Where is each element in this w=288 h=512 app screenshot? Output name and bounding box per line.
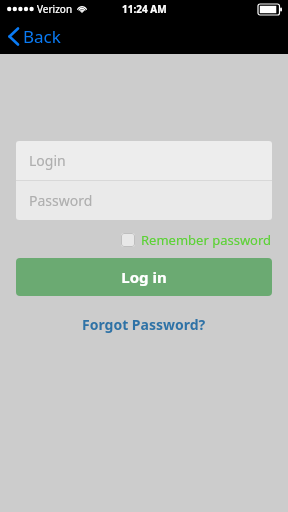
staticText: Log in [121,267,167,287]
staticText: Remember password [141,231,272,249]
button[interactable]: Login [16,141,272,180]
staticText: Forgot Password? [82,315,206,334]
button[interactable]: Password [16,181,272,220]
button[interactable]: Back [0,21,73,52]
button[interactable]: Remember password [121,229,272,251]
staticText: Login [29,151,66,170]
staticText: Password [29,191,93,210]
button[interactable]: Forgot Password? [72,311,216,338]
staticText: 11:24 AM [122,2,167,16]
staticText: Verizon [37,2,73,16]
button[interactable]: Log in [16,258,272,296]
staticText: Back [23,25,61,48]
